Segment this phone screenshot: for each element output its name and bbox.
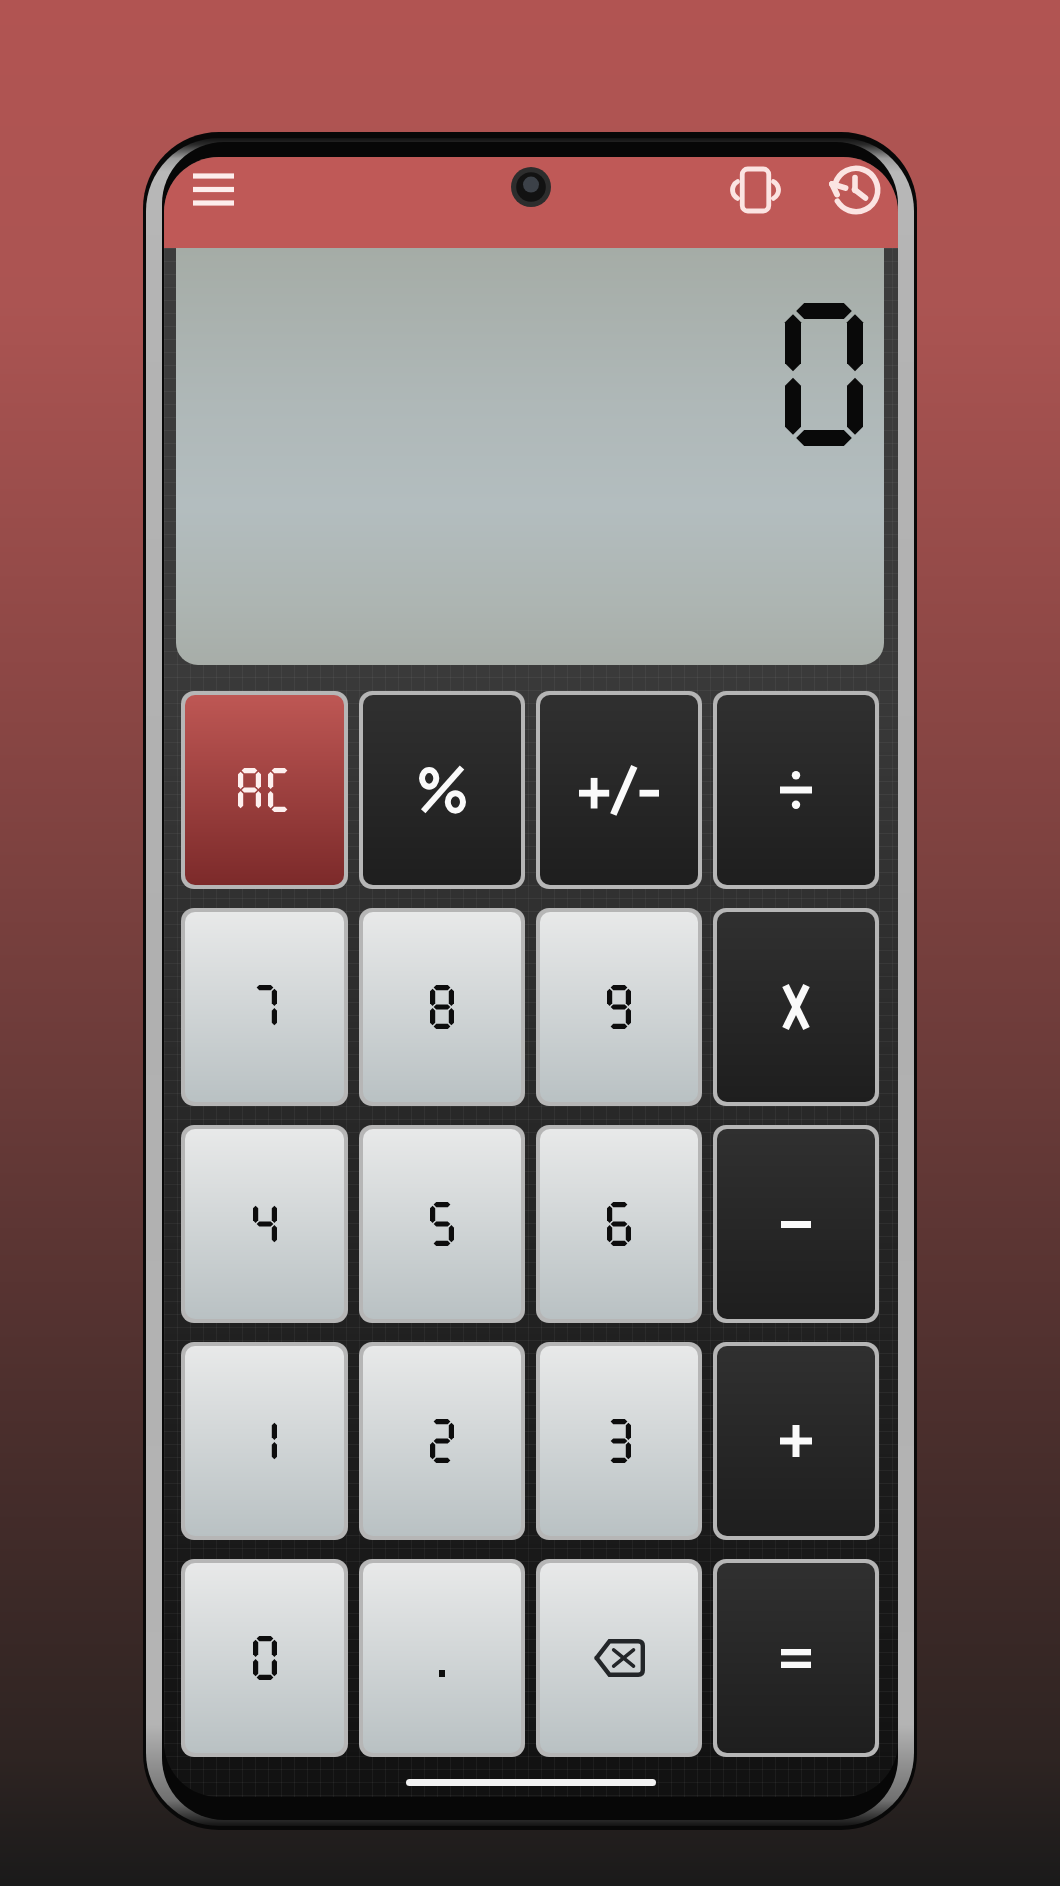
button[interactable]: History [814,157,897,223]
button[interactable] [717,1346,875,1536]
button[interactable] [540,1129,698,1319]
button[interactable] [717,1563,875,1753]
button[interactable] [363,1563,521,1753]
button[interactable] [717,1129,875,1319]
button[interactable] [363,695,521,885]
button[interactable] [185,912,344,1102]
button[interactable]: Vibration [714,157,797,223]
button[interactable] [717,912,875,1102]
button[interactable] [363,912,521,1102]
button[interactable] [540,912,698,1102]
button[interactable]: Menu [171,157,255,221]
button[interactable] [540,695,698,885]
button[interactable] [185,695,344,885]
button[interactable] [363,1129,521,1319]
button[interactable] [540,1563,698,1753]
button[interactable] [185,1129,344,1319]
button[interactable] [717,695,875,885]
button[interactable] [185,1346,344,1536]
button[interactable] [540,1346,698,1536]
button[interactable] [185,1563,344,1753]
button[interactable] [363,1346,521,1536]
